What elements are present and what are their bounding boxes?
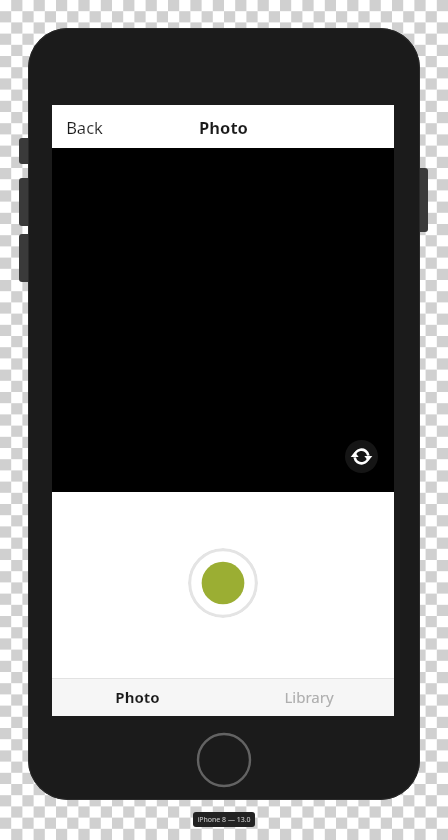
button[interactable]: Back (52, 108, 117, 146)
button[interactable]: Home (196, 732, 252, 788)
staticText: Library (284, 687, 334, 707)
button[interactable]: Photo (52, 678, 223, 716)
button[interactable]: Library (223, 678, 394, 716)
button[interactable]: Switch camera (345, 440, 378, 473)
staticText: iPhone 8 — 13.0 (197, 815, 251, 825)
button[interactable]: Take photo (188, 548, 258, 618)
staticText: Back (66, 116, 103, 138)
staticText: Photo (115, 687, 160, 707)
staticText: Photo (199, 116, 248, 138)
